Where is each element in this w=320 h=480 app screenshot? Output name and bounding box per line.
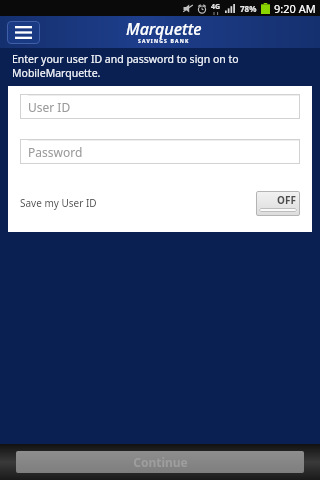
button[interactable]: Menu bbox=[7, 21, 40, 44]
staticText: OFF bbox=[277, 193, 296, 207]
button[interactable]: Continue bbox=[16, 451, 304, 473]
staticText: User ID bbox=[28, 99, 71, 115]
staticText: Password bbox=[28, 144, 83, 160]
button[interactable]: User ID bbox=[20, 94, 300, 119]
staticText: Marquette bbox=[126, 18, 202, 40]
staticText: SAVINGS BANK bbox=[138, 38, 190, 45]
staticText: Save my User ID bbox=[20, 196, 97, 210]
staticText: Enter your user ID and password to sign … bbox=[12, 52, 280, 80]
staticText: 4G bbox=[211, 2, 221, 12]
staticText: 78% bbox=[240, 3, 257, 14]
staticText: Continue bbox=[133, 454, 188, 470]
button[interactable]: Password bbox=[20, 139, 300, 164]
button[interactable]: Save my User ID toggle, off bbox=[256, 191, 300, 216]
staticText: 9:20 AM bbox=[274, 1, 316, 16]
